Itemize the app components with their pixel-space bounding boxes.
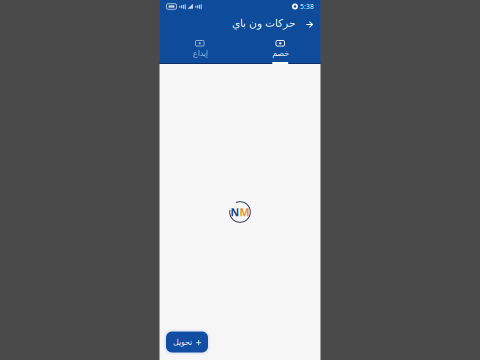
staticText: N <box>230 205 239 219</box>
staticText: حركات ون باي <box>231 17 295 29</box>
button[interactable]: Back <box>299 16 319 32</box>
staticText: تحويل <box>172 337 191 347</box>
button[interactable]: خصم <box>240 36 320 64</box>
staticText: خصم <box>272 49 289 58</box>
staticText: + <box>195 335 201 349</box>
staticText: M <box>239 205 249 219</box>
button[interactable]: إيداع <box>159 36 240 64</box>
button[interactable]: تحويل <box>164 329 210 354</box>
staticText: 5:38 <box>300 2 314 11</box>
staticText: إيداع <box>192 49 207 58</box>
